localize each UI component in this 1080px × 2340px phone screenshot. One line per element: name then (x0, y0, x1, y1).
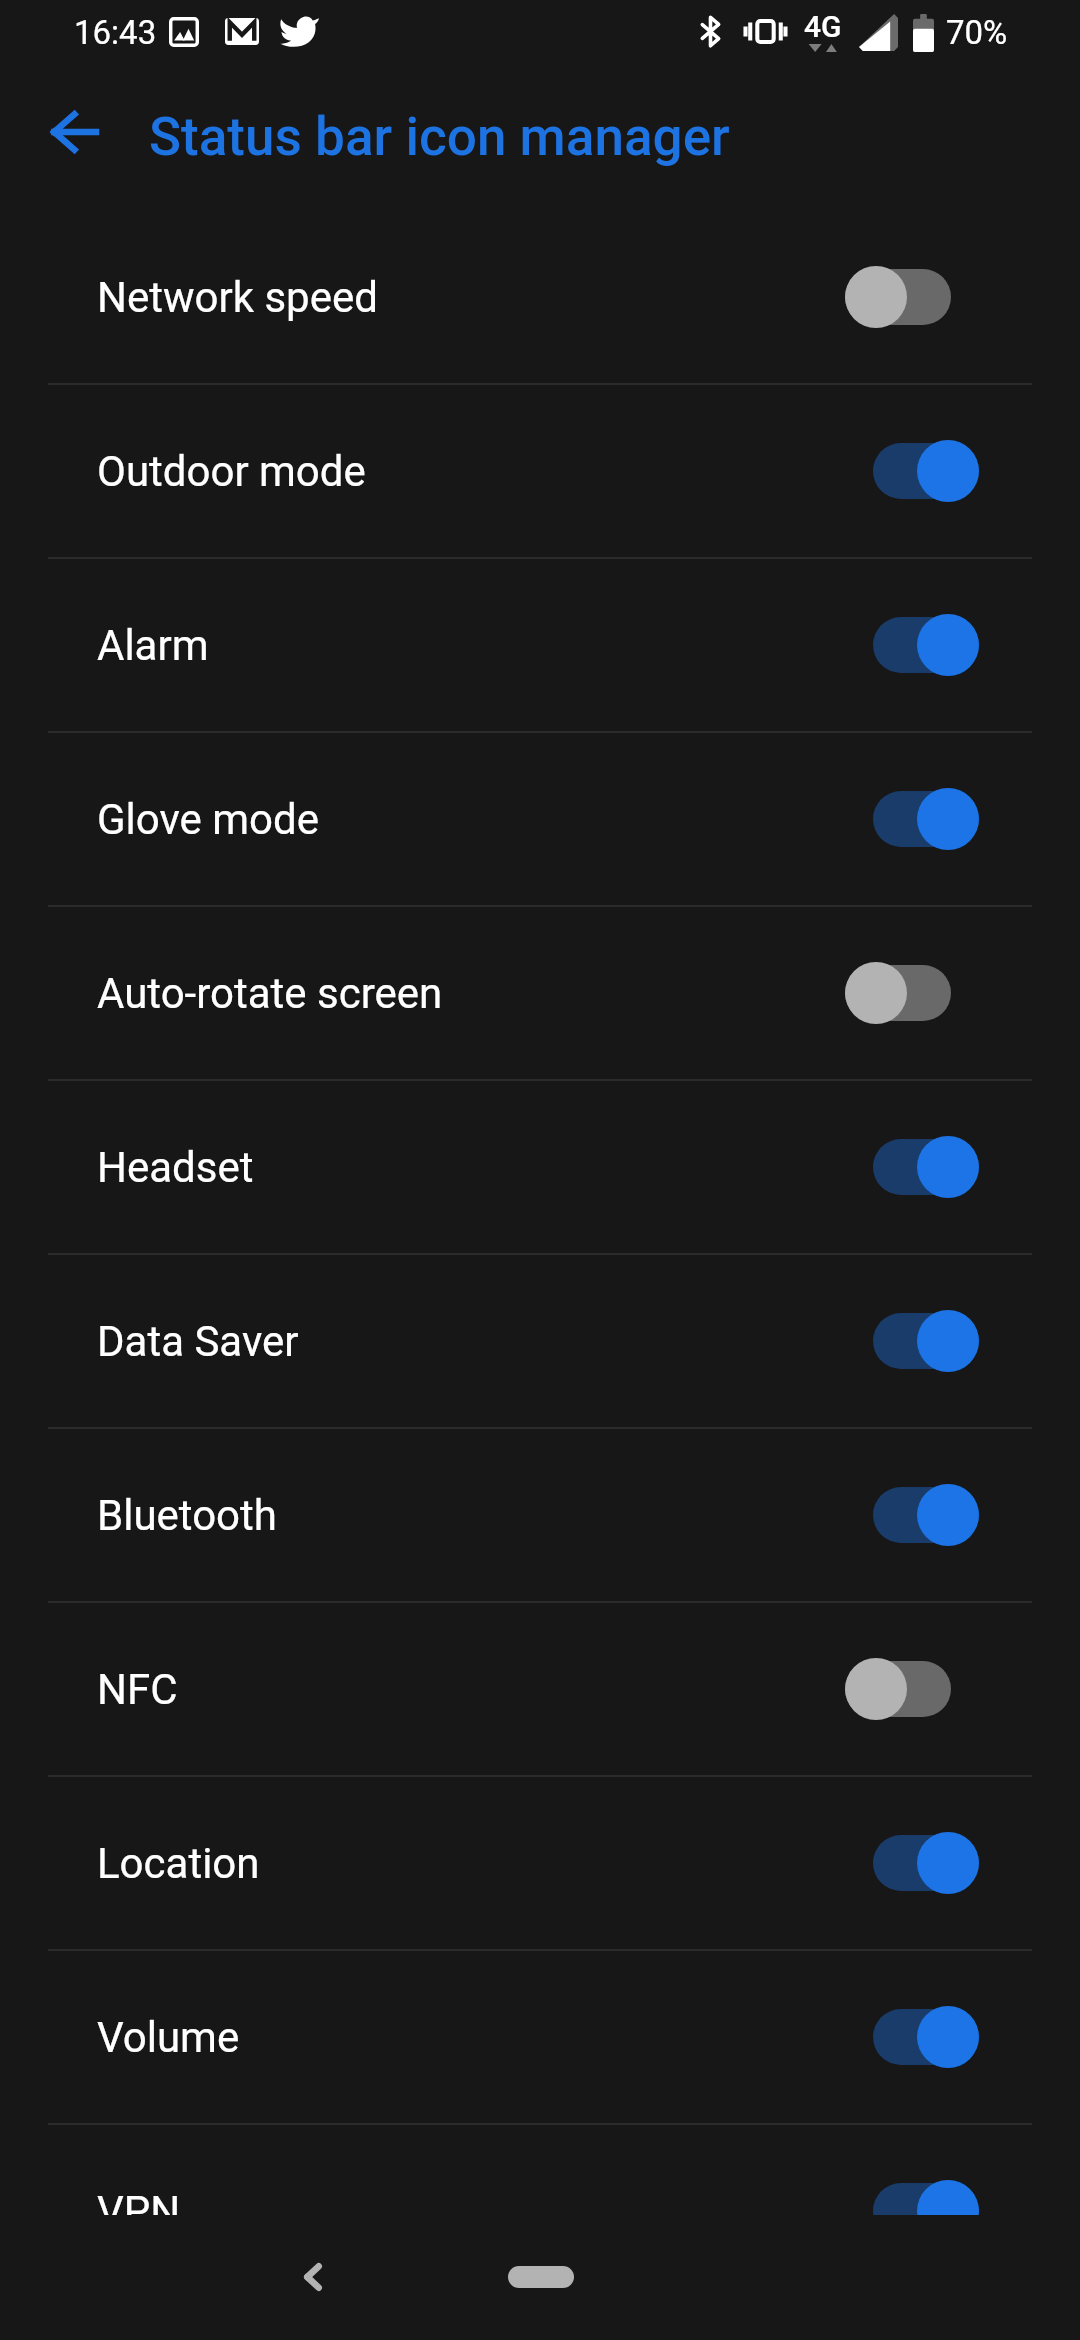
button[interactable]: NFC (0, 1603, 1080, 1775)
button[interactable]: Enabled (845, 2179, 979, 2243)
staticText: Location (97, 1839, 260, 1888)
staticText: NFC (97, 1665, 178, 1714)
staticText: Headset (97, 1143, 254, 1192)
button[interactable]: Network speed (0, 211, 1080, 383)
button[interactable]: Bluetooth (0, 1429, 1080, 1601)
button[interactable]: Data Saver (0, 1255, 1080, 1427)
staticText: Alarm (97, 621, 209, 670)
button[interactable]: Alarm (0, 559, 1080, 731)
staticText: 70% (946, 13, 1008, 52)
button[interactable]: Home (508, 2266, 574, 2288)
staticText: 16:43 (74, 13, 157, 52)
button[interactable]: Disabled (845, 265, 979, 329)
button[interactable]: Volume (0, 1951, 1080, 2123)
button[interactable]: Enabled (845, 439, 979, 503)
staticText: Volume (97, 2013, 240, 2062)
staticText: Auto-rotate screen (97, 969, 443, 1018)
button[interactable]: Auto-rotate screen (0, 907, 1080, 1079)
button[interactable]: Enabled (845, 1483, 979, 1547)
button[interactable]: Navigate up (23, 82, 123, 182)
staticText: Network speed (97, 273, 378, 322)
button[interactable]: Enabled (845, 2005, 979, 2069)
button[interactable]: Glove mode (0, 733, 1080, 905)
button[interactable]: Enabled (845, 1309, 979, 1373)
button[interactable]: Headset (0, 1081, 1080, 1253)
button[interactable]: Enabled (845, 613, 979, 677)
button[interactable]: Enabled (845, 787, 979, 851)
button[interactable]: Back (265, 2229, 361, 2325)
button[interactable]: Outdoor mode (0, 385, 1080, 557)
staticText: Outdoor mode (97, 447, 366, 496)
staticText: VPN (97, 2187, 181, 2236)
button[interactable]: Enabled (845, 1831, 979, 1895)
button[interactable]: Disabled (845, 961, 979, 1025)
staticText: 4G (804, 9, 842, 44)
staticText: Glove mode (97, 795, 319, 844)
button[interactable]: Location (0, 1777, 1080, 1949)
staticText: Status bar icon manager (149, 106, 730, 168)
button[interactable]: Disabled (845, 1657, 979, 1721)
staticText: Data Saver (97, 1317, 299, 1366)
staticText: Bluetooth (97, 1491, 277, 1540)
button[interactable]: Enabled (845, 1135, 979, 1199)
button[interactable]: VPN (0, 2125, 1080, 2297)
